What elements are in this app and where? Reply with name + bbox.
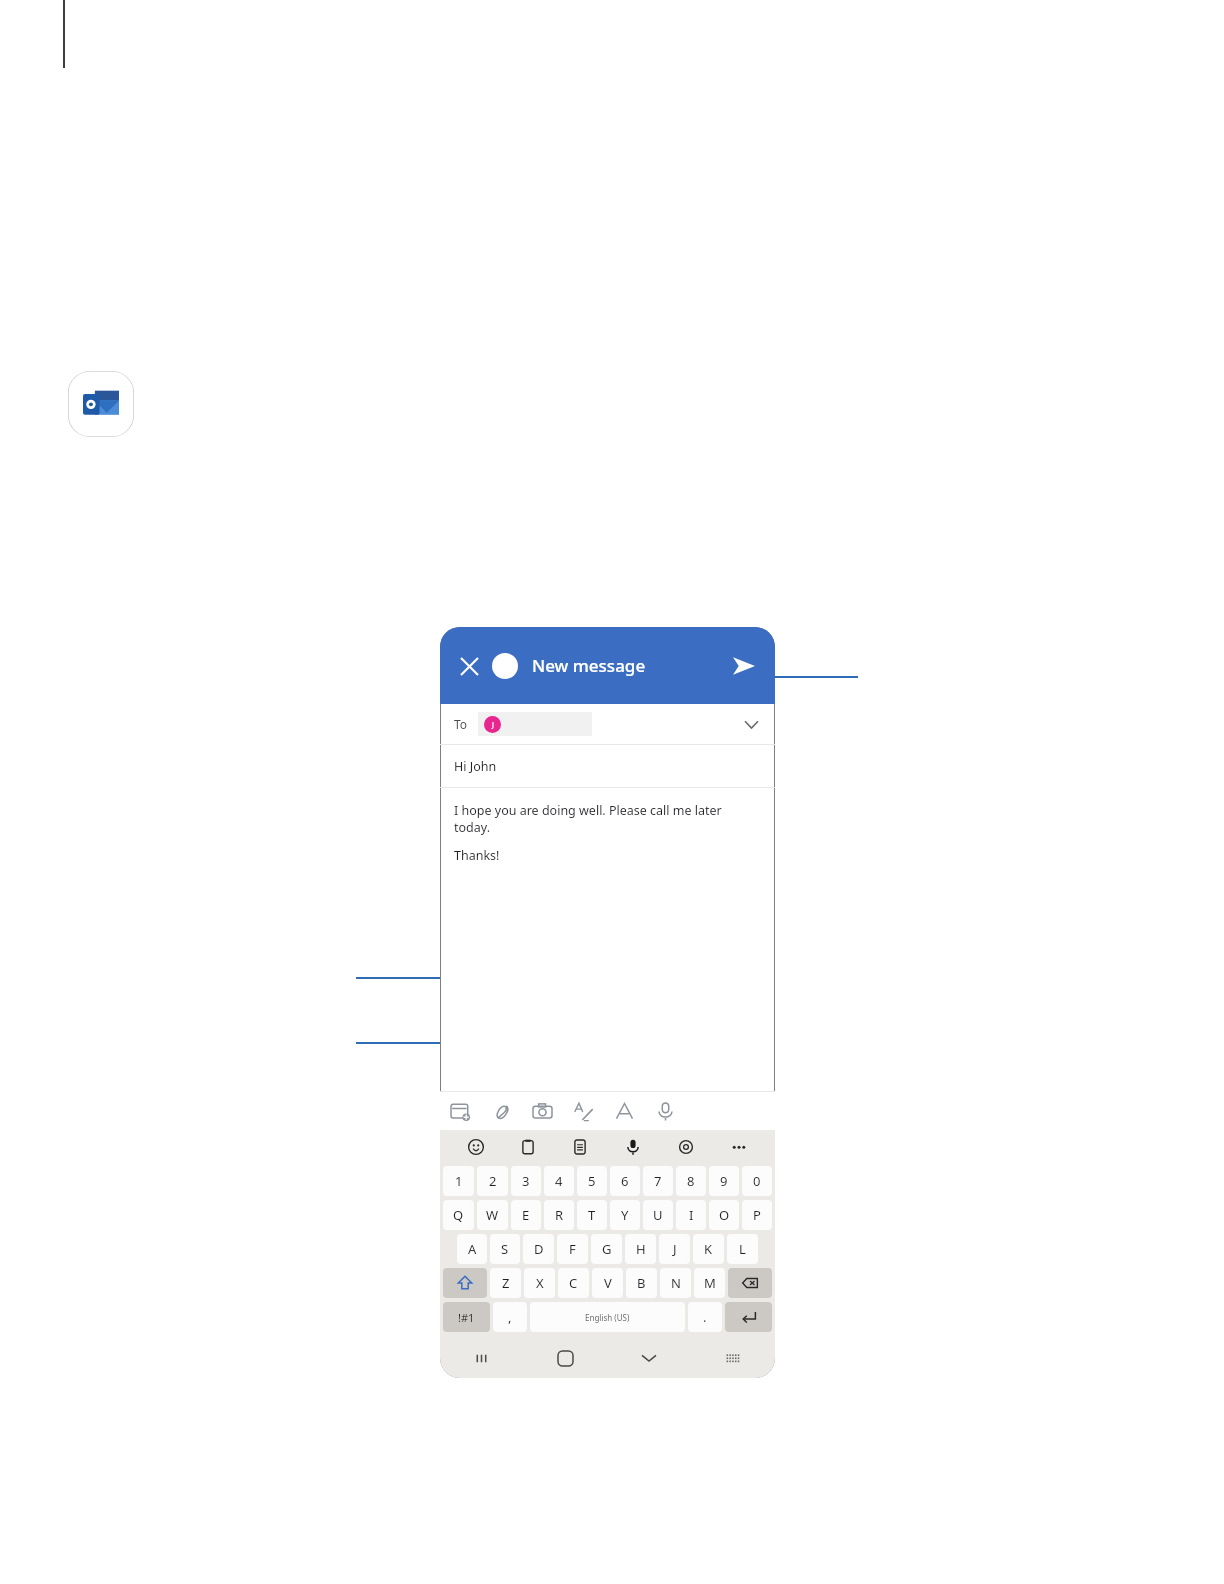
button[interactable]: T bbox=[577, 1200, 607, 1230]
button[interactable]: U bbox=[643, 1200, 673, 1230]
button[interactable]: Draw bbox=[563, 1092, 604, 1130]
staticText: 9 bbox=[720, 1172, 728, 1190]
button[interactable]: L bbox=[727, 1234, 758, 1264]
button[interactable]: C bbox=[558, 1268, 589, 1298]
staticText: English (US) bbox=[585, 1312, 630, 1323]
staticText: New message bbox=[532, 654, 646, 677]
button[interactable]: Emoji bbox=[450, 1130, 502, 1164]
staticText: !#1 bbox=[458, 1310, 475, 1325]
staticText: Hi John bbox=[454, 758, 497, 775]
button[interactable]: Hide keyboard bbox=[607, 1338, 691, 1378]
button[interactable]: Notes bbox=[554, 1130, 606, 1164]
button[interactable]: I bbox=[676, 1200, 706, 1230]
button[interactable]: Voice input bbox=[606, 1130, 659, 1164]
button[interactable]: Insert picture bbox=[440, 1092, 481, 1130]
button[interactable]: English (US) bbox=[530, 1302, 685, 1332]
staticText: J bbox=[673, 1240, 677, 1258]
button[interactable]: X bbox=[524, 1268, 555, 1298]
button[interactable]: Attach file bbox=[481, 1092, 522, 1130]
button[interactable]: Z bbox=[490, 1268, 521, 1298]
button[interactable]: Shift bbox=[443, 1268, 487, 1298]
staticText: 7 bbox=[654, 1172, 662, 1190]
button[interactable]: Q bbox=[443, 1200, 474, 1230]
button[interactable]: 6 bbox=[610, 1166, 640, 1196]
staticText: J bbox=[492, 720, 494, 730]
button[interactable]: More bbox=[712, 1130, 765, 1164]
staticText: G bbox=[602, 1240, 612, 1258]
button[interactable]: J bbox=[659, 1234, 690, 1264]
button[interactable]: M bbox=[694, 1268, 725, 1298]
button[interactable]: D bbox=[523, 1234, 554, 1264]
staticText: 2 bbox=[489, 1172, 497, 1190]
button[interactable]: Settings bbox=[659, 1130, 712, 1164]
staticText: X bbox=[536, 1274, 544, 1292]
staticText: L bbox=[739, 1240, 746, 1258]
button[interactable]: Clipboard bbox=[502, 1130, 554, 1164]
button[interactable]: 5 bbox=[577, 1166, 607, 1196]
button[interactable]: I hope you are doing well. Please call m… bbox=[440, 788, 775, 1091]
button[interactable]: O bbox=[709, 1200, 739, 1230]
button[interactable]: Home bbox=[523, 1338, 607, 1378]
button[interactable]: Recents bbox=[440, 1338, 523, 1378]
staticText: T bbox=[588, 1206, 596, 1224]
staticText: , bbox=[508, 1308, 512, 1326]
staticText: O bbox=[719, 1206, 730, 1224]
button[interactable]: 2 bbox=[477, 1166, 508, 1196]
button[interactable]: H bbox=[625, 1234, 656, 1264]
button[interactable]: . bbox=[688, 1302, 722, 1332]
button[interactable]: 0 bbox=[742, 1166, 772, 1196]
button[interactable]: W bbox=[477, 1200, 508, 1230]
button[interactable]: Expand bbox=[739, 712, 763, 736]
button[interactable]: Keyboard layout bbox=[691, 1338, 775, 1378]
button[interactable]: , bbox=[493, 1302, 527, 1332]
button[interactable]: 7 bbox=[643, 1166, 673, 1196]
staticText: 5 bbox=[588, 1172, 596, 1190]
staticText: Y bbox=[621, 1206, 629, 1224]
button[interactable]: P bbox=[742, 1200, 772, 1230]
staticText: V bbox=[604, 1274, 612, 1292]
button[interactable]: To bbox=[440, 704, 775, 744]
staticText: F bbox=[569, 1240, 576, 1258]
staticText: 6 bbox=[621, 1172, 629, 1190]
staticText: P bbox=[753, 1206, 761, 1224]
button[interactable]: K bbox=[693, 1234, 724, 1264]
button[interactable]: Backspace bbox=[728, 1268, 772, 1298]
button[interactable]: R bbox=[544, 1200, 574, 1230]
staticText: 3 bbox=[522, 1172, 530, 1190]
staticText: C bbox=[569, 1274, 578, 1292]
staticText: H bbox=[636, 1240, 646, 1258]
staticText: Q bbox=[453, 1206, 464, 1224]
button[interactable]: Close bbox=[454, 651, 484, 681]
button[interactable]: 1 bbox=[443, 1166, 474, 1196]
button[interactable]: Y bbox=[610, 1200, 640, 1230]
button[interactable]: 9 bbox=[709, 1166, 739, 1196]
button[interactable]: 3 bbox=[511, 1166, 541, 1196]
staticText: U bbox=[653, 1206, 663, 1224]
staticText: A bbox=[468, 1240, 477, 1258]
button[interactable]: B bbox=[626, 1268, 657, 1298]
button[interactable]: S bbox=[490, 1234, 520, 1264]
button[interactable]: Camera bbox=[522, 1092, 563, 1130]
button[interactable]: 8 bbox=[676, 1166, 706, 1196]
button[interactable]: G bbox=[591, 1234, 622, 1264]
button[interactable]: N bbox=[660, 1268, 691, 1298]
staticText: R bbox=[555, 1206, 564, 1224]
button[interactable]: V bbox=[592, 1268, 623, 1298]
button[interactable]: Enter bbox=[725, 1302, 772, 1332]
button[interactable]: Format text bbox=[604, 1092, 645, 1130]
button[interactable]: F bbox=[557, 1234, 588, 1264]
staticText: N bbox=[671, 1274, 681, 1292]
button[interactable]: Send bbox=[727, 649, 761, 683]
button[interactable]: Outlook bbox=[68, 371, 134, 437]
button[interactable]: E bbox=[511, 1200, 541, 1230]
button[interactable]: Voice bbox=[645, 1092, 686, 1130]
staticText: I bbox=[689, 1206, 694, 1224]
button[interactable]: 4 bbox=[544, 1166, 574, 1196]
button[interactable]: Hi John bbox=[440, 745, 775, 787]
staticText: 8 bbox=[687, 1172, 695, 1190]
staticText: S bbox=[501, 1240, 509, 1258]
staticText: W bbox=[486, 1206, 499, 1224]
staticText: . bbox=[703, 1308, 707, 1326]
button[interactable]: A bbox=[457, 1234, 487, 1264]
button[interactable]: !#1 bbox=[443, 1302, 490, 1332]
